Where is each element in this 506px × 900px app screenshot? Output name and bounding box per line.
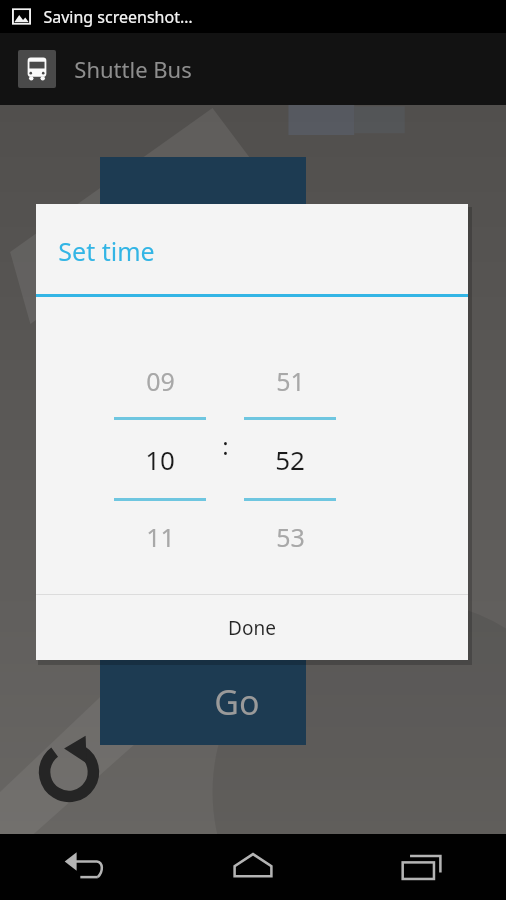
- button[interactable]: 11: [114, 508, 206, 566]
- button[interactable]: Refresh: [30, 730, 108, 808]
- staticText: 09: [146, 364, 175, 398]
- staticText: Saving screenshot…: [43, 6, 193, 28]
- staticText: 10: [145, 442, 175, 477]
- button[interactable]: Done: [36, 595, 468, 660]
- button[interactable]: 10: [114, 420, 206, 498]
- button[interactable]: 51: [244, 352, 336, 410]
- button[interactable]: Home: [168, 834, 337, 900]
- staticText: Shuttle Bus: [74, 54, 192, 84]
- button[interactable]: 52: [244, 420, 336, 498]
- button[interactable]: Back: [0, 834, 168, 900]
- staticText: 51: [276, 364, 305, 398]
- staticText: 11: [146, 520, 175, 554]
- staticText: 52: [275, 442, 305, 477]
- staticText: :: [222, 429, 229, 462]
- button[interactable]: 53: [244, 508, 336, 566]
- button[interactable]: Go: [100, 157, 306, 745]
- staticText: Go: [214, 679, 260, 725]
- button[interactable]: Recent apps: [337, 834, 506, 900]
- staticText: Set time: [58, 234, 155, 268]
- staticText: Done: [228, 615, 276, 641]
- staticText: 53: [276, 520, 305, 554]
- button[interactable]: 09: [114, 352, 206, 410]
